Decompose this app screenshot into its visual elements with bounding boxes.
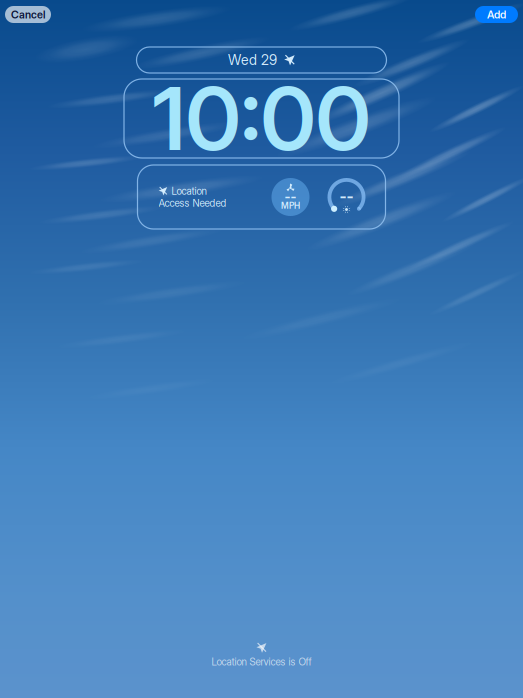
staticText: Wed 29 [228,51,277,68]
staticText: MPH [281,200,300,211]
button[interactable]: Add [475,6,518,23]
button[interactable]: 10:00 [124,79,399,158]
staticText: -- [284,188,296,204]
button[interactable]: Location [137,165,385,229]
staticText: Add [487,8,506,21]
staticText: Location Services is Off [211,656,311,668]
staticText: Access Needed [158,197,226,209]
button[interactable]: Wed 29 [136,47,386,73]
staticText: 10:00 [152,66,370,171]
staticText: -- [339,187,353,206]
staticText: Location [171,185,206,197]
button[interactable]: Cancel [5,6,51,23]
staticText: Cancel [11,8,45,21]
